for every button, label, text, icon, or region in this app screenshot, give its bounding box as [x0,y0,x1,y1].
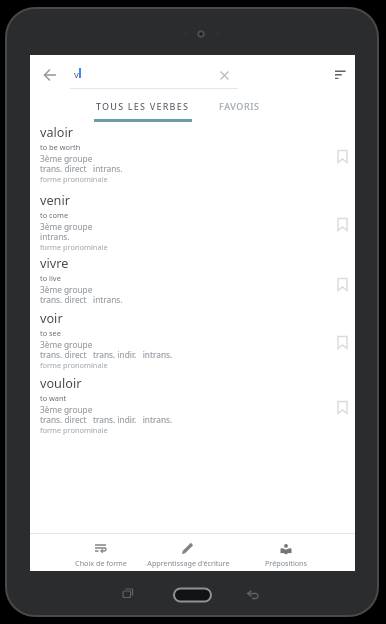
staticText: Apprentissage d'écriture [147,558,230,568]
staticText: to want [40,393,67,403]
staticText: valoir [40,123,74,140]
staticText: to be worth [40,142,81,152]
staticText: trans. direct trans. indir. intrans. [40,349,173,360]
button[interactable]: Prépositions [241,535,331,571]
staticText: trans. direct trans. indir. intrans. [40,414,173,425]
staticText: FAVORIS [219,100,260,112]
staticText: 3ème groupe [40,339,93,350]
button[interactable] [336,277,349,292]
button[interactable]: Apprentissage d'écriture [133,535,243,571]
staticText: to see [40,328,61,338]
button[interactable]: valoir [30,123,355,187]
button[interactable] [327,61,355,89]
staticText: forme pronominale [40,360,108,370]
button[interactable] [36,61,64,89]
staticText: forme pronominale [40,174,108,184]
staticText: voir [40,309,63,326]
button[interactable] [336,335,349,350]
staticText: trans. direct intrans. [40,163,123,174]
staticText: venir [40,191,70,208]
button[interactable] [210,61,238,89]
staticText: vouloir [40,374,82,391]
button[interactable] [336,149,349,164]
staticText: 3ème groupe [40,221,93,232]
staticText: 3ème groupe [40,284,93,295]
button[interactable] [336,217,349,232]
button[interactable]: TOUS LES VERBES [83,93,203,119]
staticText: 3ème groupe [40,404,93,415]
button[interactable]: voir [30,309,355,373]
button[interactable]: venir [30,191,355,255]
button[interactable]: Choix de forme [56,535,146,571]
staticText: 3ème groupe [40,153,93,164]
button[interactable]: vivre [30,254,355,307]
staticText: TOUS LES VERBES [96,100,190,112]
staticText: to live [40,273,61,283]
button[interactable] [336,400,349,415]
staticText: to come [40,210,69,220]
button[interactable]: vouloir [30,374,355,438]
staticText: Choix de forme [75,558,127,568]
staticText: forme pronominale [40,242,108,252]
staticText: vivre [40,254,69,271]
staticText: trans. direct intrans. [40,294,123,305]
staticText: forme pronominale [40,425,108,435]
staticText: Prépositions [265,558,307,568]
button[interactable]: FAVORIS [199,93,279,119]
staticText: intrans. [40,231,70,242]
staticText: v [74,68,79,81]
